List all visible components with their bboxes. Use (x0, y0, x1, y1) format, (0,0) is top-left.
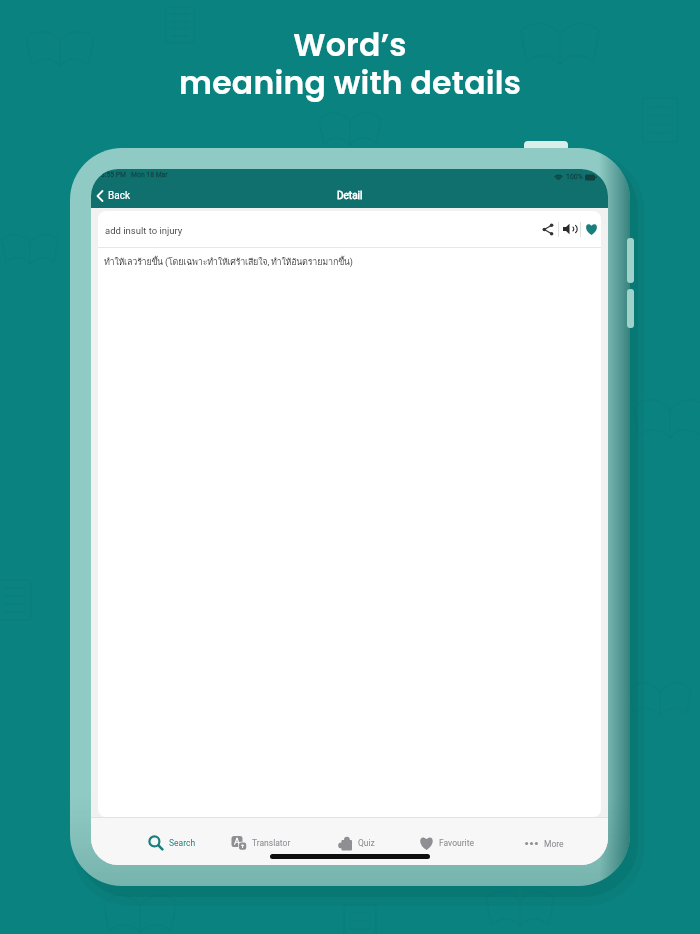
button[interactable]: Search (112, 829, 232, 857)
button[interactable] (581, 211, 601, 247)
button[interactable]: Translator (201, 829, 321, 857)
staticText: add insult to injury (105, 225, 183, 236)
button[interactable] (559, 211, 580, 247)
button[interactable]: Back (96, 190, 130, 202)
button[interactable] (537, 211, 558, 247)
staticText: Favourite (439, 838, 474, 848)
button[interactable]: add insult to injury (98, 211, 601, 247)
staticText: ทำให้เลวร้ายขึ้น (โดยเฉพาะทำให้เศร้าเสีย… (104, 255, 353, 269)
button[interactable]: Quiz (296, 829, 416, 857)
staticText: 3:55 PM Mon 18 Mar (101, 171, 168, 179)
button[interactable]: More (484, 829, 604, 857)
staticText: Word’s meaning with details (0, 23, 700, 105)
staticText: 100% (566, 173, 583, 181)
staticText: Quiz (358, 838, 375, 848)
staticText: More (544, 839, 564, 849)
staticText: Search (169, 838, 196, 848)
staticText: Detail (337, 190, 363, 202)
staticText: Translator (252, 838, 291, 848)
staticText: Back (108, 190, 130, 202)
button[interactable]: Favourite (386, 829, 506, 857)
